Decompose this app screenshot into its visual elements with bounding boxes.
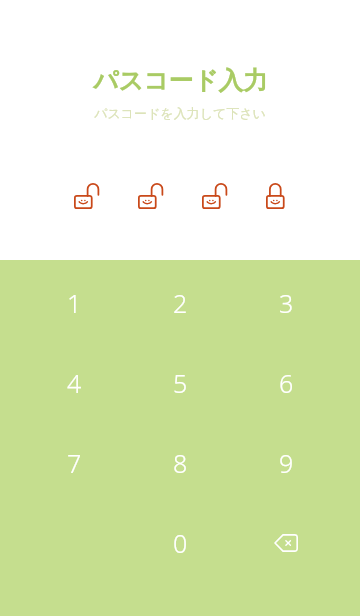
button[interactable]: 3	[233, 263, 339, 343]
staticText: 2	[173, 286, 188, 320]
staticText: パスコードを入力して下さい	[94, 105, 266, 121]
button[interactable]: Delete	[233, 503, 339, 583]
button[interactable]: 5	[127, 343, 233, 423]
button[interactable]: 7	[21, 423, 127, 503]
staticText: 4	[67, 366, 82, 400]
staticText: 7	[67, 446, 82, 480]
staticText: 8	[173, 446, 188, 480]
button[interactable]: 8	[127, 423, 233, 503]
button[interactable]: 9	[233, 423, 339, 503]
button[interactable]: 0	[127, 503, 233, 583]
button[interactable]: 2	[127, 263, 233, 343]
button[interactable]: 1	[21, 263, 127, 343]
other: Delete	[274, 534, 298, 552]
staticText: 9	[279, 446, 294, 480]
staticText: 3	[279, 286, 294, 320]
button[interactable]: 4	[21, 343, 127, 423]
staticText: パスコード入力	[93, 65, 268, 96]
staticText: 6	[279, 366, 294, 400]
button[interactable]: 6	[233, 343, 339, 423]
staticText: 5	[173, 366, 188, 400]
staticText: 1	[67, 286, 82, 320]
staticText: 0	[173, 526, 188, 560]
